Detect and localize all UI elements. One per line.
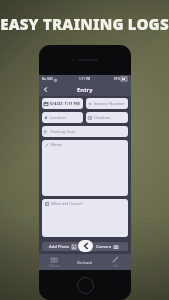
staticText: EASY TRAINING LOGS xyxy=(0,14,169,34)
button[interactable]: Go back xyxy=(69,254,100,270)
staticText: Camera xyxy=(49,264,60,268)
button[interactable]: Add Photo xyxy=(42,242,83,251)
button[interactable]: Location xyxy=(42,112,83,123)
button[interactable]: Go back xyxy=(78,240,93,252)
button[interactable]: Back xyxy=(39,83,52,96)
button[interactable]: Camera xyxy=(86,242,128,251)
button[interactable]: 5/4/23 1:11 PM xyxy=(42,98,83,109)
staticText: Notes xyxy=(51,142,63,147)
button[interactable]: Camera xyxy=(39,254,69,270)
button[interactable]: Edit xyxy=(100,254,131,270)
staticText: 1:11 PM xyxy=(79,77,91,81)
staticText: Session Number xyxy=(94,101,125,106)
staticText: 5/4/23 1:11 PM xyxy=(50,101,80,106)
staticText: Duration xyxy=(94,115,111,120)
staticText: Edit xyxy=(113,264,119,268)
staticText: Entry xyxy=(77,86,93,94)
staticText: Go back xyxy=(77,260,93,265)
button[interactable]: Training Goal xyxy=(42,126,128,137)
staticText: Camera xyxy=(96,244,112,249)
staticText: Add Photo xyxy=(49,244,70,249)
staticText: No SIM xyxy=(42,77,53,81)
staticText: Training Goal xyxy=(50,129,75,134)
button[interactable]: Duration xyxy=(86,112,128,123)
button[interactable]: What did I learn? xyxy=(42,199,128,237)
staticText: 81% xyxy=(114,77,120,81)
staticText: What did I learn? xyxy=(51,201,83,206)
button[interactable]: Session Number xyxy=(86,98,128,109)
staticText: Location xyxy=(50,115,67,120)
button[interactable]: Notes xyxy=(42,140,128,196)
